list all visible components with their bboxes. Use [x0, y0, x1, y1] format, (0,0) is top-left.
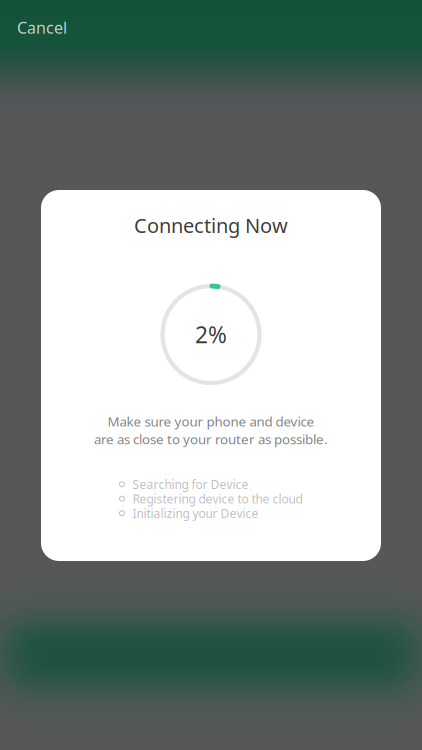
staticText: 2%	[195, 319, 227, 350]
staticText: Searching for Device	[132, 476, 248, 492]
staticText: are as close to your router as possible.	[94, 430, 328, 448]
staticText: Initializing your Device	[132, 505, 258, 521]
button[interactable]: Cancel	[0, 0, 83, 50]
staticText: Cancel	[17, 17, 67, 38]
staticText: Registering device to the cloud	[132, 491, 302, 507]
staticText: Make sure your phone and device	[107, 413, 314, 430]
staticText: Connecting Now	[134, 212, 288, 239]
